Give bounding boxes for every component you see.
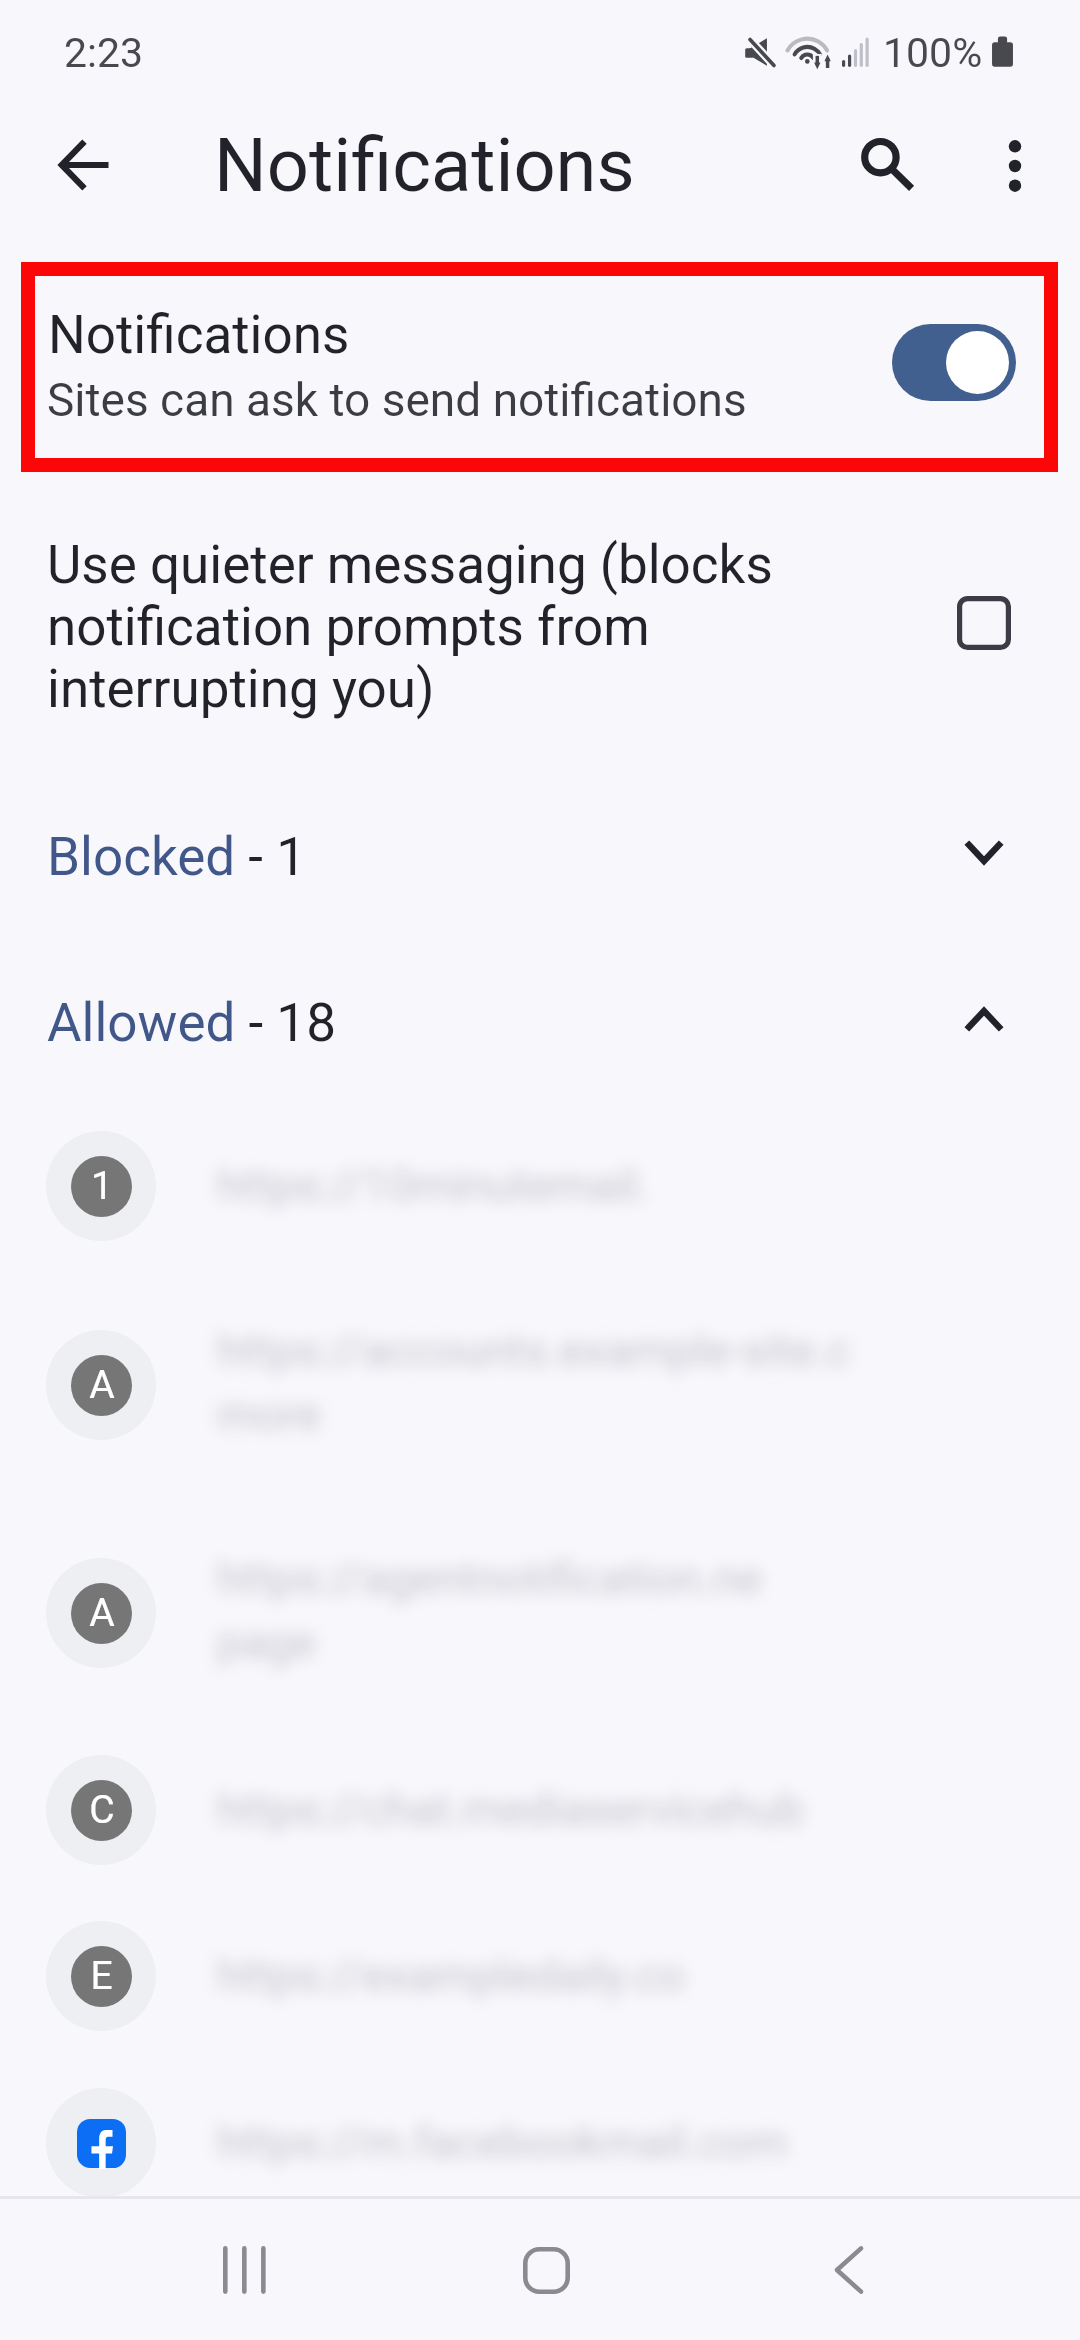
staticText: https://chat.mediaservicehub: [217, 1783, 1037, 1836]
staticText: Blocked - 1: [47, 826, 306, 888]
button[interactable]: C: [0, 1727, 1080, 1893]
staticText: 1: [91, 1163, 113, 1209]
staticText: Notifications: [214, 122, 635, 209]
button[interactable]: Use quieter messaging (blocks notificati…: [0, 500, 1080, 740]
staticText: https://exampledaily.co: [217, 1949, 1037, 2002]
button[interactable]: Blocked - 1: [0, 789, 1080, 955]
staticText: Notifications: [48, 304, 350, 366]
button[interactable]: E: [0, 1893, 1080, 2059]
staticText: Use quieter messaging (blocks notificati…: [47, 534, 837, 720]
button[interactable]: Allowed - 18: [0, 955, 1080, 1121]
staticText: 100%: [883, 29, 983, 77]
staticText: 2:23: [64, 29, 144, 77]
staticText: https://10minutemail.: [217, 1159, 1037, 1212]
button[interactable]: Recent apps: [180, 2206, 308, 2334]
staticText: A: [89, 1362, 115, 1408]
button[interactable]: Notifications: [35, 276, 1044, 458]
button[interactable]: Notifications toggle: [892, 324, 1016, 401]
staticText: Sites can ask to send notifications: [47, 373, 747, 427]
staticText: E: [90, 1953, 113, 1999]
button[interactable]: Back: [785, 2206, 913, 2334]
button[interactable]: A: [0, 1270, 1080, 1500]
button[interactable]: More options: [953, 104, 1077, 228]
button[interactable]: https://m.facebookmail.com: [0, 2060, 1080, 2226]
staticText: https://m.facebookmail.com: [217, 2116, 1037, 2169]
staticText: https://agentnotification.ne page: [217, 1552, 1037, 1669]
button[interactable]: Home: [482, 2206, 610, 2334]
button[interactable]: A: [0, 1498, 1080, 1728]
staticText: A: [89, 1590, 115, 1636]
staticText: https://accounts.example-site.c more: [217, 1324, 1037, 1441]
staticText: C: [89, 1787, 115, 1833]
button[interactable]: Back: [22, 103, 146, 227]
staticText: Allowed - 18: [47, 992, 336, 1054]
button[interactable]: Search: [851, 128, 917, 194]
button[interactable]: 1: [0, 1103, 1080, 1269]
